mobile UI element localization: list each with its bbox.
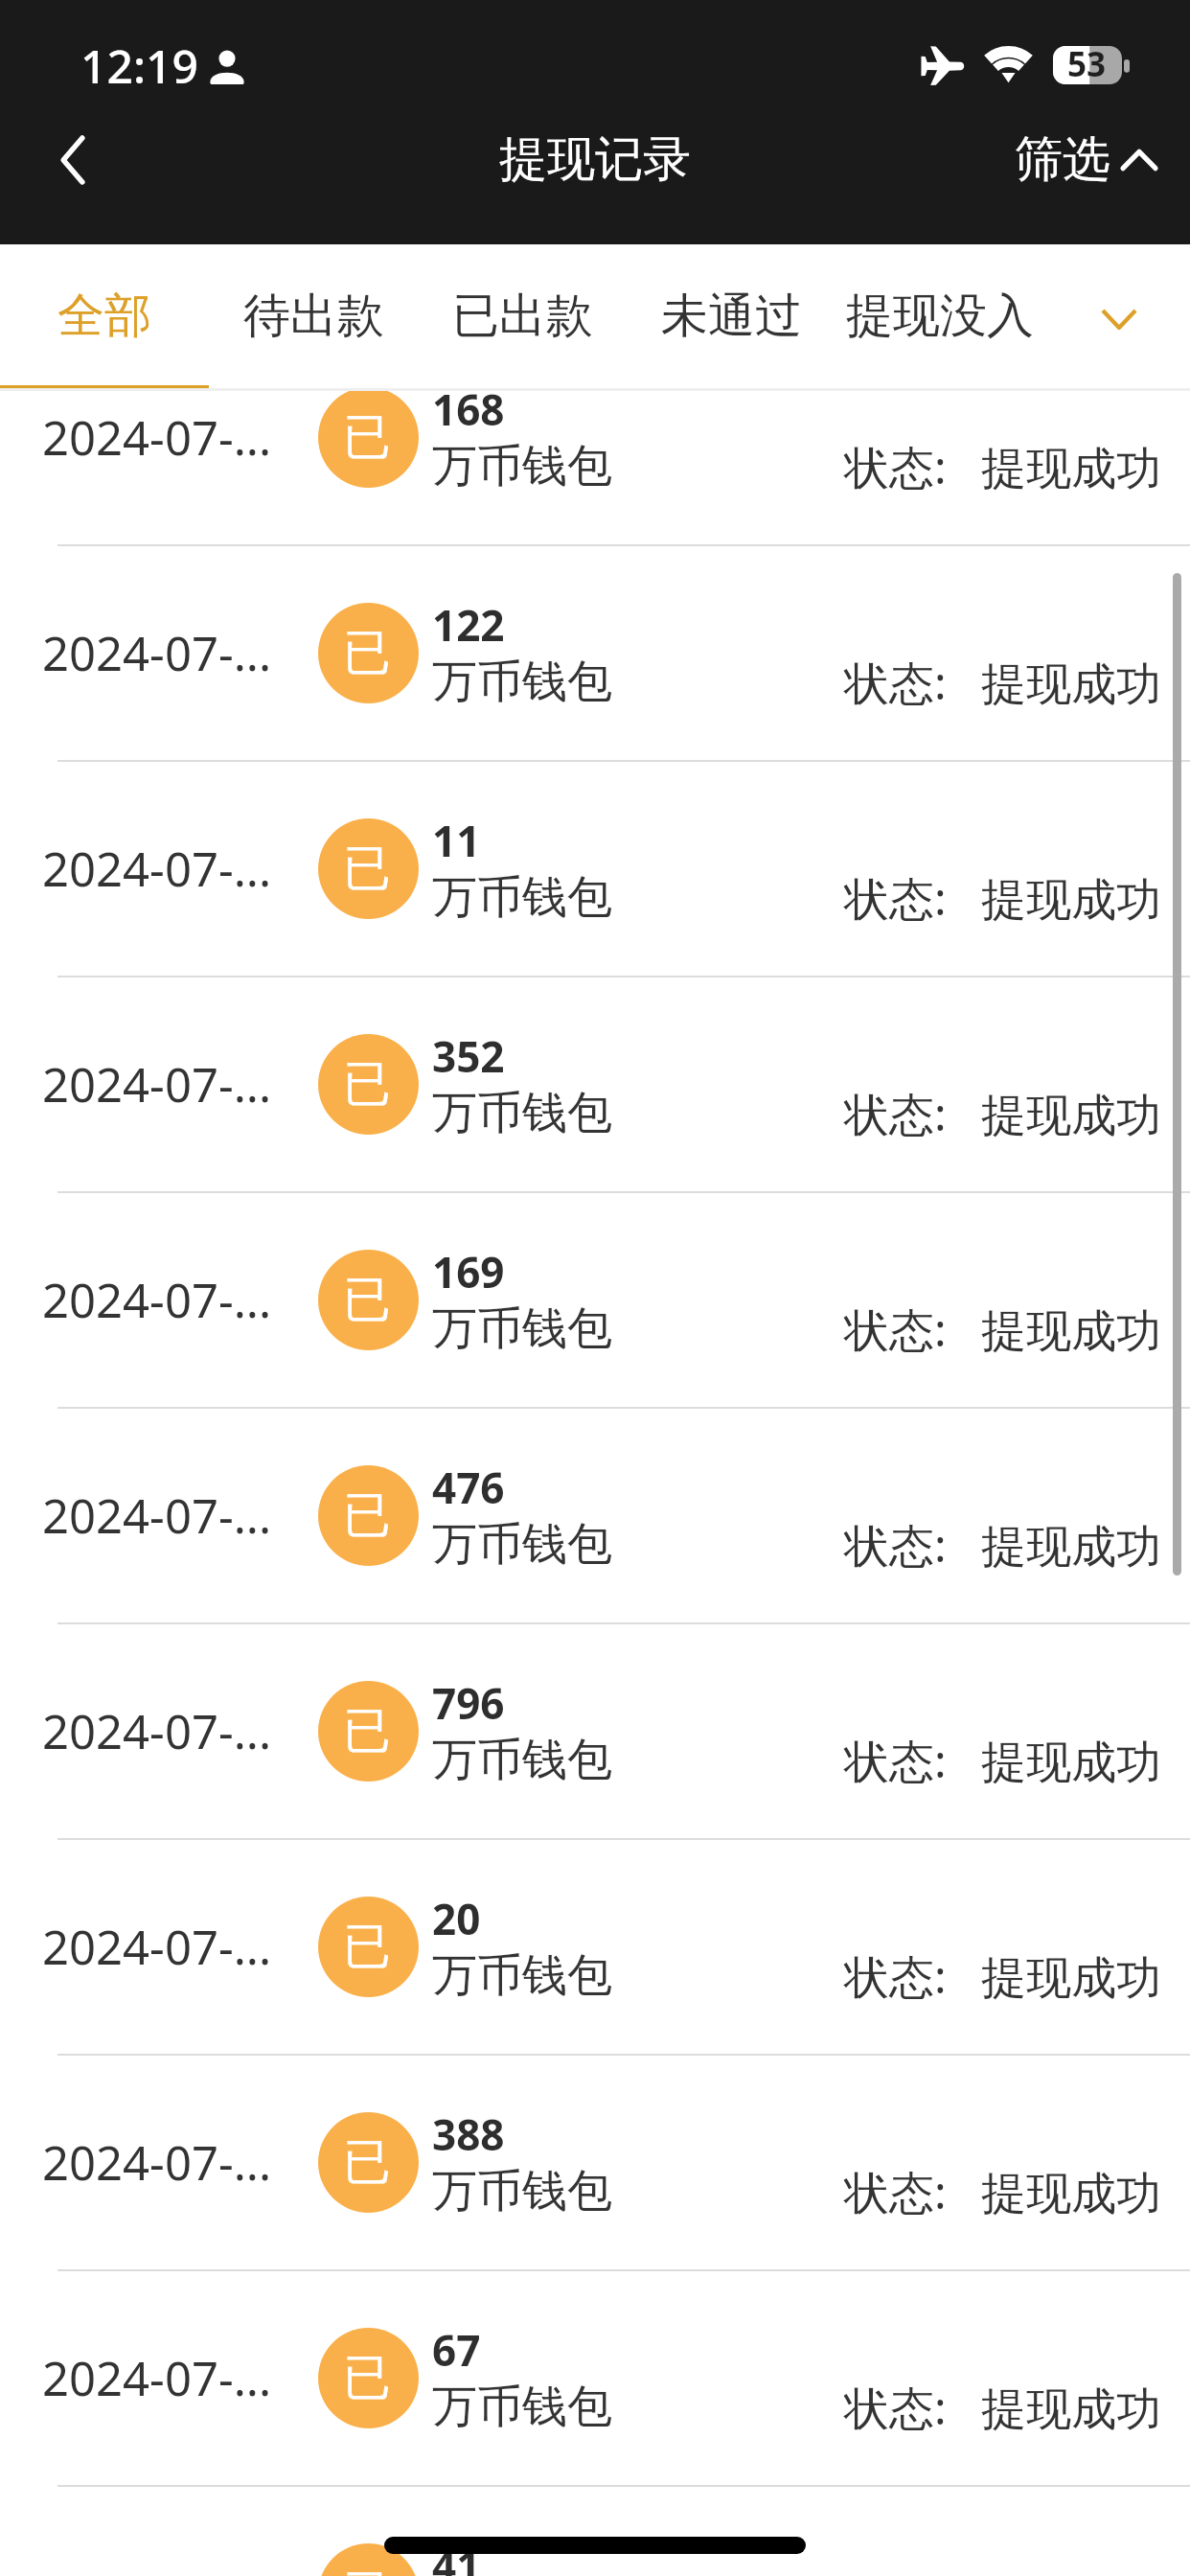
staticText: 2024-07-...	[42, 1483, 272, 1548]
staticText: 万币钱包	[432, 2379, 612, 2435]
button[interactable]: 2024-07-...	[0, 2487, 1190, 2576]
staticText: 状态: 提现成功	[844, 652, 1162, 713]
staticText: 已	[343, 1701, 391, 1761]
staticText: 53	[1067, 41, 1107, 87]
staticText: 万币钱包	[432, 654, 612, 710]
staticText: 万币钱包	[432, 1085, 612, 1141]
button[interactable]: 全部	[0, 244, 209, 388]
button[interactable]: 已出款	[418, 244, 627, 388]
staticText: 11	[432, 812, 481, 869]
staticText: 全部	[57, 287, 151, 346]
button[interactable]: 提现没入	[835, 244, 1044, 388]
staticText: 已	[343, 1917, 391, 1977]
staticText: 已	[343, 1270, 391, 1330]
button[interactable]: 2024-07-...	[0, 546, 1190, 762]
staticText: 万币钱包	[432, 869, 612, 926]
staticText: 2024-07-...	[42, 405, 272, 470]
staticText: 122	[432, 596, 505, 654]
staticText: 2024-07-...	[42, 837, 272, 901]
button[interactable]: 筛选	[1015, 100, 1158, 219]
staticText: 已	[343, 1485, 391, 1546]
staticText: 万币钱包	[432, 1947, 612, 2004]
button[interactable]: 2024-07-...	[0, 1624, 1190, 1840]
button[interactable]: 2024-07-...	[0, 2056, 1190, 2271]
staticText: 状态: 提现成功	[844, 1730, 1162, 1791]
button[interactable]: 2024-07-...	[0, 762, 1190, 977]
staticText: 状态: 提现成功	[844, 867, 1162, 929]
button[interactable]: 2024-07-...	[0, 1193, 1190, 1409]
staticText: 状态: 提现成功	[844, 1299, 1162, 1360]
staticText: 万币钱包	[432, 1300, 612, 1357]
staticText: 待出款	[243, 287, 384, 346]
button[interactable]: Back	[0, 100, 146, 219]
staticText: 已	[343, 2564, 391, 2576]
staticText: 提现记录	[499, 129, 691, 190]
staticText: 状态: 提现成功	[844, 2161, 1162, 2222]
button[interactable]: 2024-07-...	[0, 1840, 1190, 2056]
staticText: 提现没入	[846, 287, 1034, 346]
button[interactable]: 未通过	[627, 244, 835, 388]
staticText: 2024-07-...	[42, 2130, 272, 2195]
staticText: 352	[432, 1027, 505, 1085]
staticText: 万币钱包	[432, 438, 612, 494]
staticText: 20	[432, 1890, 481, 1947]
button[interactable]: 2024-07-...	[0, 1409, 1190, 1624]
staticText: 已出款	[452, 287, 593, 346]
button[interactable]: 2024-07-...	[0, 2271, 1190, 2487]
staticText: 万币钱包	[432, 2163, 612, 2219]
staticText: 2024-07-...	[42, 1052, 272, 1116]
button[interactable]: Expand filters	[1044, 244, 1190, 388]
staticText: 已	[343, 407, 391, 468]
staticText: 状态: 提现成功	[844, 436, 1162, 497]
staticText: 2024-07-...	[42, 2346, 272, 2410]
staticText: 796	[432, 1674, 505, 1732]
staticText: 已	[343, 839, 391, 899]
staticText: 2024-07-...	[42, 1915, 272, 1979]
button[interactable]: 2024-07-...	[0, 977, 1190, 1193]
staticText: 已	[343, 2132, 391, 2193]
staticText: 万币钱包	[432, 1732, 612, 1788]
staticText: 41	[432, 2537, 481, 2576]
staticText: 已	[343, 2348, 391, 2408]
staticText: 万币钱包	[432, 1516, 612, 1573]
staticText: 已	[343, 1054, 391, 1115]
button[interactable]: 待出款	[209, 244, 418, 388]
staticText: 169	[432, 1243, 505, 1300]
staticText: 已	[343, 623, 391, 683]
staticText: 476	[432, 1459, 505, 1516]
staticText: 状态: 提现成功	[844, 1945, 1162, 2007]
staticText: 168	[432, 388, 505, 438]
staticText: 67	[432, 2321, 481, 2379]
staticText: 2024-07-...	[42, 1699, 272, 1763]
staticText: 2024-07-...	[42, 1268, 272, 1332]
staticText: 未通过	[661, 287, 802, 346]
staticText: 12:19	[80, 34, 198, 97]
staticText: 状态: 提现成功	[844, 2377, 1162, 2438]
staticText: 388	[432, 2105, 505, 2163]
staticText: 筛选	[1015, 129, 1110, 190]
button[interactable]: 2024-07-...	[0, 388, 1190, 546]
staticText: 2024-07-...	[42, 621, 272, 685]
staticText: 状态: 提现成功	[844, 1514, 1162, 1575]
staticText: 状态: 提现成功	[844, 1083, 1162, 1144]
